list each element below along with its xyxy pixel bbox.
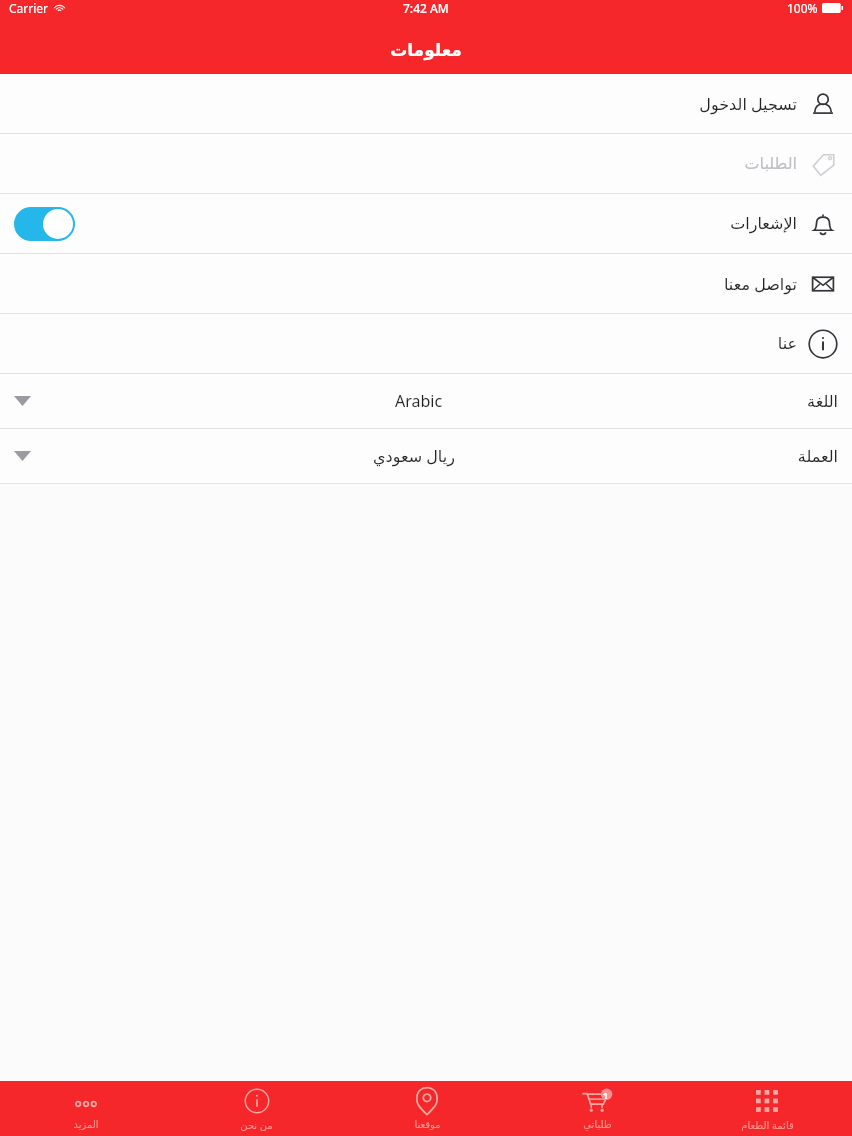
staticText: تسجيل الدخول <box>699 93 797 115</box>
button[interactable]: الطلبات <box>0 134 852 193</box>
staticText: 100% <box>787 0 818 16</box>
staticText: ريال سعودي <box>373 445 455 467</box>
staticText: قائمة الطعام <box>741 1118 794 1132</box>
button[interactable]: عنا <box>0 314 852 373</box>
button[interactable]: Arabic <box>0 374 852 428</box>
staticText: العملة <box>797 447 838 466</box>
staticText: تواصل معنا <box>723 273 797 295</box>
staticText: طلباتي <box>583 1119 612 1131</box>
button[interactable]: تواصل معنا <box>0 254 852 313</box>
staticText: عنا <box>777 334 797 353</box>
staticText: معلومات <box>390 40 462 60</box>
staticText: من نحن <box>240 1118 273 1132</box>
staticText: 7:42 AM <box>403 0 449 16</box>
button[interactable]: Notifications toggle <box>0 194 852 253</box>
button[interactable]: Our location <box>342 1081 512 1136</box>
staticText: 1 <box>603 1089 609 1101</box>
button[interactable]: تسجيل الدخول <box>0 74 852 133</box>
button[interactable]: More <box>0 1081 171 1136</box>
staticText: موقعنا <box>414 1119 441 1131</box>
button[interactable]: My orders <box>512 1081 682 1136</box>
staticText: Arabic <box>395 390 443 412</box>
button[interactable]: Menu <box>682 1081 852 1136</box>
staticText: الإشعارات <box>730 214 797 233</box>
staticText: الطلبات <box>744 154 797 173</box>
button[interactable]: ريال سعودي <box>0 429 852 483</box>
staticText: المزيد <box>73 1119 99 1131</box>
staticText: Carrier <box>9 0 49 16</box>
staticText: اللغة <box>807 392 838 411</box>
button[interactable]: About us <box>171 1081 342 1136</box>
button[interactable]: Notifications toggle <box>14 207 75 241</box>
